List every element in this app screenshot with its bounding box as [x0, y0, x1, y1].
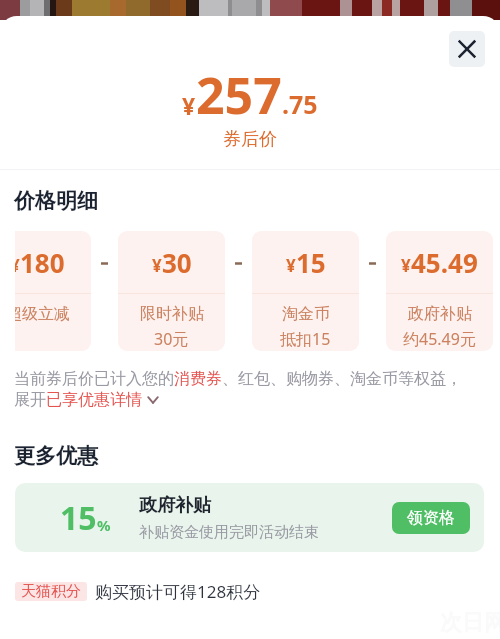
staticText: 券后价 [223, 128, 277, 151]
staticText: 30元 [154, 328, 189, 350]
staticText: 展开 [14, 390, 46, 410]
staticText: 领资格 [407, 508, 455, 528]
staticText: 限时补贴 [140, 304, 204, 324]
staticText: 补贴资金使用完即活动结束 [139, 523, 319, 542]
button[interactable]: ¥ [252, 231, 359, 351]
staticText: .75 [282, 87, 318, 121]
button[interactable]: 领资格 [392, 502, 470, 534]
staticText: 消费券 [174, 369, 222, 389]
button[interactable]: ¥ [118, 231, 225, 351]
button[interactable]: 15 [15, 483, 484, 552]
staticText: 15 [60, 496, 97, 540]
staticText: 180 [20, 245, 65, 280]
button[interactable]: Close [449, 31, 485, 67]
staticText: 淘金币 [282, 304, 330, 324]
staticText: ¥ [401, 254, 411, 277]
staticText: 已享优惠详情 [46, 390, 142, 410]
button[interactable]: ¥ [15, 231, 91, 351]
staticText: ¥ [286, 254, 296, 277]
staticText: 15 [296, 245, 326, 280]
staticText: 30 [162, 245, 192, 280]
staticText: ¥ [182, 90, 196, 121]
staticText: 政府补贴 [139, 494, 211, 517]
staticText: % [97, 515, 111, 535]
staticText: 购买预计可得128积分 [95, 580, 261, 603]
staticText: 抵扣15 [280, 328, 331, 350]
staticText: 天猫积分 [21, 582, 81, 601]
staticText: 价格明细 [14, 188, 98, 214]
staticText: 257 [196, 61, 282, 129]
staticText: 约45.49元 [403, 328, 476, 350]
staticText: 政府补贴 [408, 304, 472, 324]
staticText: 超级立减 [15, 304, 70, 324]
staticText: 45.49 [411, 245, 478, 280]
staticText: 、红包、购物券、淘金币等权益， [222, 369, 462, 389]
staticText: ¥ [15, 254, 20, 277]
button[interactable]: ¥ [386, 231, 493, 351]
staticText: 当前券后价已计入您的 [14, 369, 174, 389]
staticText: ¥ [152, 254, 162, 277]
staticText: 更多优惠 [14, 443, 98, 469]
